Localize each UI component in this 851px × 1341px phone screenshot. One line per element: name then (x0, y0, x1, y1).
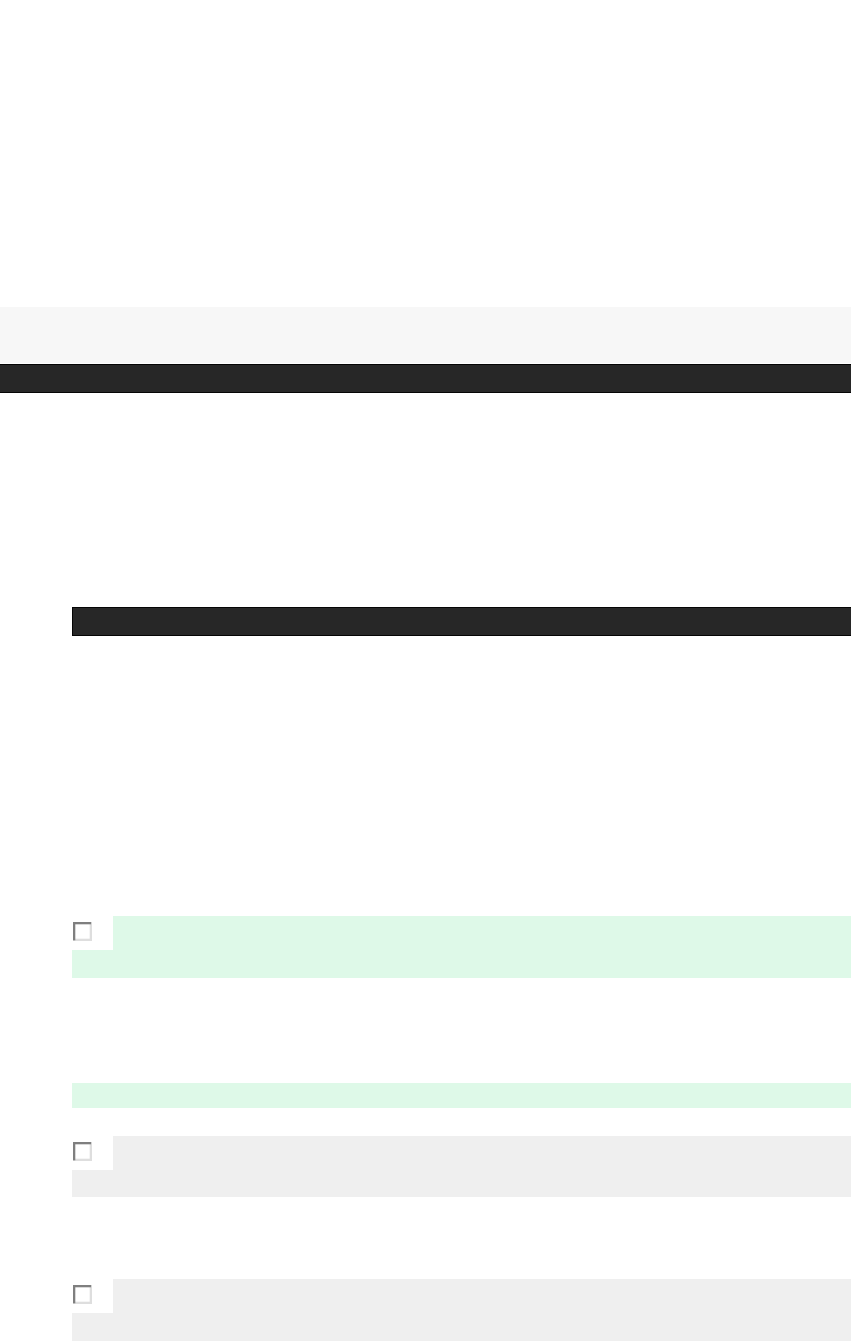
button[interactable]: Question prompt (0, 307, 851, 393)
button[interactable]: Section heading (72, 607, 851, 636)
button[interactable]: Toggle Answer option 3 (73, 1285, 92, 1304)
button[interactable]: Answer option 2 (0, 1136, 851, 1197)
button[interactable]: Answer option 3 (0, 1279, 851, 1341)
button[interactable]: Answer option 1 (0, 916, 851, 978)
button[interactable]: Toggle Answer option 1 (73, 922, 92, 941)
button[interactable]: Toggle Answer option 2 (73, 1142, 92, 1161)
